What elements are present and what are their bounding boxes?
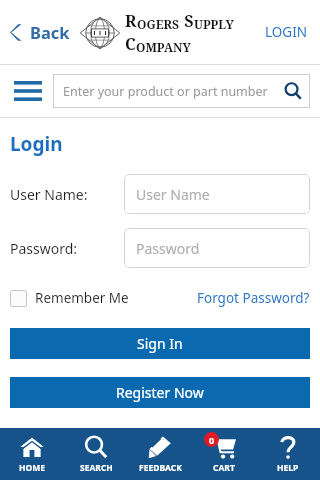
- button[interactable]: Enter your product or part number: [53, 74, 310, 108]
- staticText: OMPANY: [136, 39, 191, 55]
- staticText: R: [125, 10, 137, 32]
- button[interactable]: SEARCH: [64, 428, 128, 480]
- button[interactable]: Forgot Password?: [197, 286, 310, 310]
- staticText: C: [125, 33, 136, 55]
- staticText: Login: [10, 131, 63, 157]
- staticText: SEARCH: [80, 462, 113, 474]
- staticText: OGERS: [137, 16, 180, 32]
- staticText: Password:: [10, 239, 78, 258]
- button[interactable]: Menu: [6, 73, 50, 109]
- staticText: Forgot Password?: [197, 289, 310, 307]
- staticText: FEEDBACK: [139, 462, 182, 474]
- staticText: 0: [209, 434, 215, 446]
- staticText: User Name:: [10, 185, 88, 204]
- staticText: Enter your product or part number: [63, 83, 268, 100]
- staticText: HELP: [277, 462, 299, 474]
- button[interactable]: Remember Me: [10, 286, 129, 310]
- button[interactable]: Password: [124, 228, 310, 268]
- staticText: Password: [136, 239, 200, 258]
- button[interactable]: HELP: [256, 428, 320, 480]
- staticText: UPPLY: [194, 16, 234, 32]
- staticText: HOME: [19, 462, 46, 474]
- button[interactable]: HOME: [0, 428, 64, 480]
- staticText: Back: [30, 21, 70, 43]
- button[interactable]: User Name: [124, 174, 310, 214]
- staticText: CART: [213, 462, 235, 474]
- button[interactable]: Sign In: [10, 328, 310, 359]
- staticText: Remember Me: [35, 289, 129, 307]
- staticText: Sign In: [137, 334, 183, 353]
- staticText: S: [180, 10, 194, 32]
- button[interactable]: FEEDBACK: [128, 428, 192, 480]
- staticText: LOGIN: [265, 23, 308, 41]
- button[interactable]: 0: [192, 428, 256, 480]
- button[interactable]: LOGIN: [261, 17, 312, 47]
- staticText: Register Now: [116, 383, 204, 402]
- button[interactable]: Register Now: [10, 377, 310, 408]
- staticText: User Name: [136, 185, 210, 204]
- button[interactable]: Back: [6, 15, 74, 49]
